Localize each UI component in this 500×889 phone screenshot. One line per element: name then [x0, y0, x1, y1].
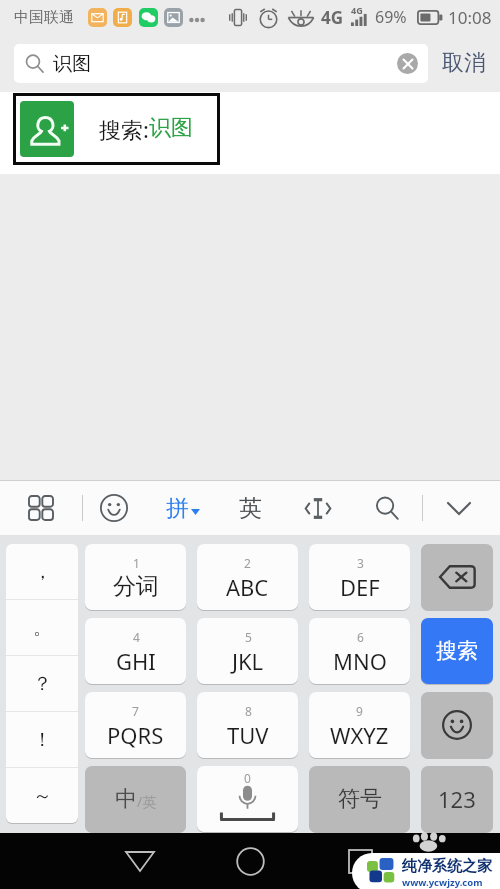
button[interactable]: Space, voice input — [197, 766, 298, 832]
staticText: 中 — [115, 785, 137, 813]
staticText: 5 — [245, 629, 252, 645]
button[interactable]: Keyboard layouts — [15, 481, 67, 535]
staticText: TUV — [227, 720, 269, 750]
button[interactable]: 7 — [85, 692, 186, 758]
button[interactable]: 1 — [85, 544, 186, 610]
staticText: 。 — [33, 616, 52, 640]
button[interactable]: ～ — [6, 768, 78, 823]
staticText: 2 — [244, 555, 251, 571]
button[interactable]: 3 — [309, 544, 410, 610]
staticText: DEF — [340, 572, 380, 602]
button[interactable]: ？ — [6, 656, 78, 711]
staticText: 英 — [239, 494, 262, 523]
button[interactable]: 6 — [309, 618, 410, 684]
staticText: 取消 — [442, 49, 486, 77]
staticText: /英 — [137, 792, 157, 811]
staticText: 中国联通 — [14, 8, 74, 27]
staticText: 0 — [244, 770, 251, 786]
staticText: 3 — [357, 555, 364, 571]
button[interactable]: 5 — [197, 618, 298, 684]
staticText: ！ — [33, 728, 52, 752]
staticText: www.ycwjzy.com — [402, 876, 483, 889]
button[interactable]: 取消 — [428, 34, 500, 92]
staticText: 69% — [375, 6, 407, 28]
staticText: MNO — [333, 646, 387, 676]
staticText: 纯净系统之家 — [402, 857, 492, 876]
button[interactable]: 2 — [197, 544, 298, 610]
staticText: 1 — [133, 555, 140, 571]
staticText: ， — [33, 560, 52, 584]
staticText: JKL — [232, 646, 264, 676]
button[interactable]: 4 — [85, 618, 186, 684]
staticText: 123 — [438, 784, 476, 814]
button[interactable]: 搜索 — [421, 618, 493, 684]
staticText: 拼 — [166, 494, 189, 523]
button[interactable]: Emoji — [421, 692, 493, 758]
button[interactable]: 123 — [421, 766, 493, 832]
staticText: 10:08 — [448, 6, 492, 29]
staticText: 9 — [356, 703, 363, 719]
staticText: ？ — [33, 672, 52, 696]
button[interactable]: Home — [220, 833, 280, 889]
staticText: 4G — [351, 4, 363, 16]
button[interactable]: Clear text — [397, 53, 418, 74]
button[interactable]: 9 — [309, 692, 410, 758]
staticText: 符号 — [338, 785, 382, 813]
button[interactable]: Back — [110, 833, 170, 889]
button[interactable]: 识图 — [14, 44, 428, 83]
button[interactable]: ！ — [6, 712, 78, 767]
button[interactable]: 符号 — [309, 766, 410, 832]
staticText: 7 — [132, 703, 139, 719]
button[interactable]: Search — [361, 481, 413, 535]
staticText: 6 — [357, 629, 364, 645]
staticText: WXYZ — [330, 720, 389, 750]
button[interactable]: Backspace — [421, 544, 493, 610]
staticText: 识图 — [149, 114, 193, 142]
staticText: 8 — [245, 703, 252, 719]
staticText: 分词 — [113, 572, 159, 601]
staticText: GHI — [116, 646, 156, 676]
button[interactable]: 搜索: — [13, 93, 220, 165]
button[interactable]: Recents — [330, 833, 390, 889]
button[interactable]: Move cursor — [292, 481, 344, 535]
staticText: 识图 — [53, 52, 91, 76]
button[interactable]: 8 — [197, 692, 298, 758]
staticText: 4 — [133, 629, 140, 645]
staticText: ～ — [33, 784, 52, 808]
button[interactable]: 英 — [224, 481, 276, 535]
button[interactable]: ， — [6, 544, 78, 599]
staticText: PQRS — [107, 720, 164, 750]
staticText: 搜索 — [436, 638, 478, 664]
button[interactable]: Hide keyboard — [433, 481, 485, 535]
button[interactable]: 。 — [6, 600, 78, 655]
staticText: 4G — [321, 6, 344, 29]
button[interactable]: 拼 — [155, 481, 211, 535]
button[interactable]: Emoji — [88, 481, 140, 535]
button[interactable]: 中 — [85, 766, 186, 832]
staticText: 搜索: — [99, 114, 149, 144]
staticText: ABC — [226, 572, 269, 602]
